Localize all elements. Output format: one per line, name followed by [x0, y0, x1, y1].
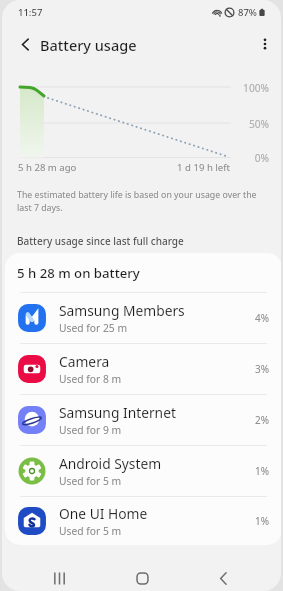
- button[interactable]: Android System: [5, 446, 281, 496]
- staticText: 2%: [255, 413, 270, 427]
- button[interactable]: Home: [126, 562, 158, 591]
- staticText: The estimated battery life is based on y…: [17, 189, 257, 213]
- staticText: Used for 25 m: [59, 321, 128, 335]
- staticText: 87%: [238, 6, 257, 19]
- button[interactable]: Samsung Internet: [5, 395, 281, 445]
- staticText: 100%: [219, 81, 269, 95]
- staticText: 5 h 28 m on battery: [17, 264, 140, 282]
- staticText: One UI Home: [59, 504, 148, 523]
- staticText: Android System: [59, 454, 162, 473]
- staticText: 1%: [255, 514, 270, 528]
- button[interactable]: Navigate up: [12, 31, 38, 57]
- staticText: Used for 9 m: [59, 423, 122, 437]
- button[interactable]: Back: [207, 562, 239, 591]
- staticText: 1 d 19 h left: [130, 161, 230, 174]
- staticText: 11:57: [18, 6, 43, 19]
- button[interactable]: Recent apps: [43, 562, 75, 591]
- button[interactable]: Samsung Members: [5, 293, 281, 343]
- staticText: 5 h 28 m ago: [18, 161, 77, 174]
- button[interactable]: Camera: [5, 344, 281, 394]
- staticText: Battery usage: [40, 35, 137, 55]
- staticText: Samsung Internet: [59, 403, 176, 422]
- staticText: Samsung Members: [59, 301, 185, 320]
- staticText: Camera: [59, 352, 110, 371]
- staticText: 3%: [255, 362, 270, 376]
- button[interactable]: More options: [252, 31, 278, 57]
- button[interactable]: One UI Home: [5, 497, 281, 545]
- staticText: Battery usage since last full charge: [17, 234, 184, 248]
- staticText: Used for 5 m: [59, 474, 122, 488]
- staticText: 4%: [255, 311, 270, 325]
- staticText: 50%: [219, 117, 269, 131]
- staticText: Used for 8 m: [59, 372, 122, 386]
- staticText: 0%: [219, 151, 269, 165]
- staticText: 1%: [255, 464, 270, 478]
- staticText: Used for 5 m: [59, 524, 122, 538]
